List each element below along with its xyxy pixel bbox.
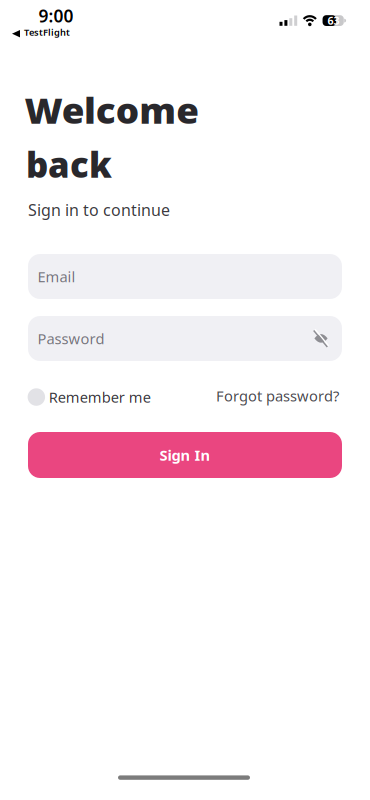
staticText: Password — [37, 329, 104, 348]
staticText: Remember me — [49, 387, 151, 407]
staticText: TestFlight — [24, 26, 70, 38]
button[interactable]: Back to TestFlight — [12, 26, 70, 38]
staticText: 63 — [327, 13, 339, 28]
button[interactable]: Password — [28, 316, 342, 361]
staticText: Forgot password? — [216, 386, 339, 405]
button[interactable]: Remember me — [28, 388, 152, 408]
staticText: Sign in to continue — [28, 199, 170, 220]
staticText: Sign In — [159, 445, 210, 465]
staticText: Email — [37, 267, 75, 286]
button[interactable]: Forgot password? — [216, 386, 339, 405]
staticText: 9:00 — [38, 4, 73, 27]
staticText: Welcome — [24, 87, 188, 133]
button[interactable]: Email — [28, 254, 342, 299]
staticText: back — [26, 141, 112, 187]
button[interactable]: Sign In — [28, 432, 342, 478]
